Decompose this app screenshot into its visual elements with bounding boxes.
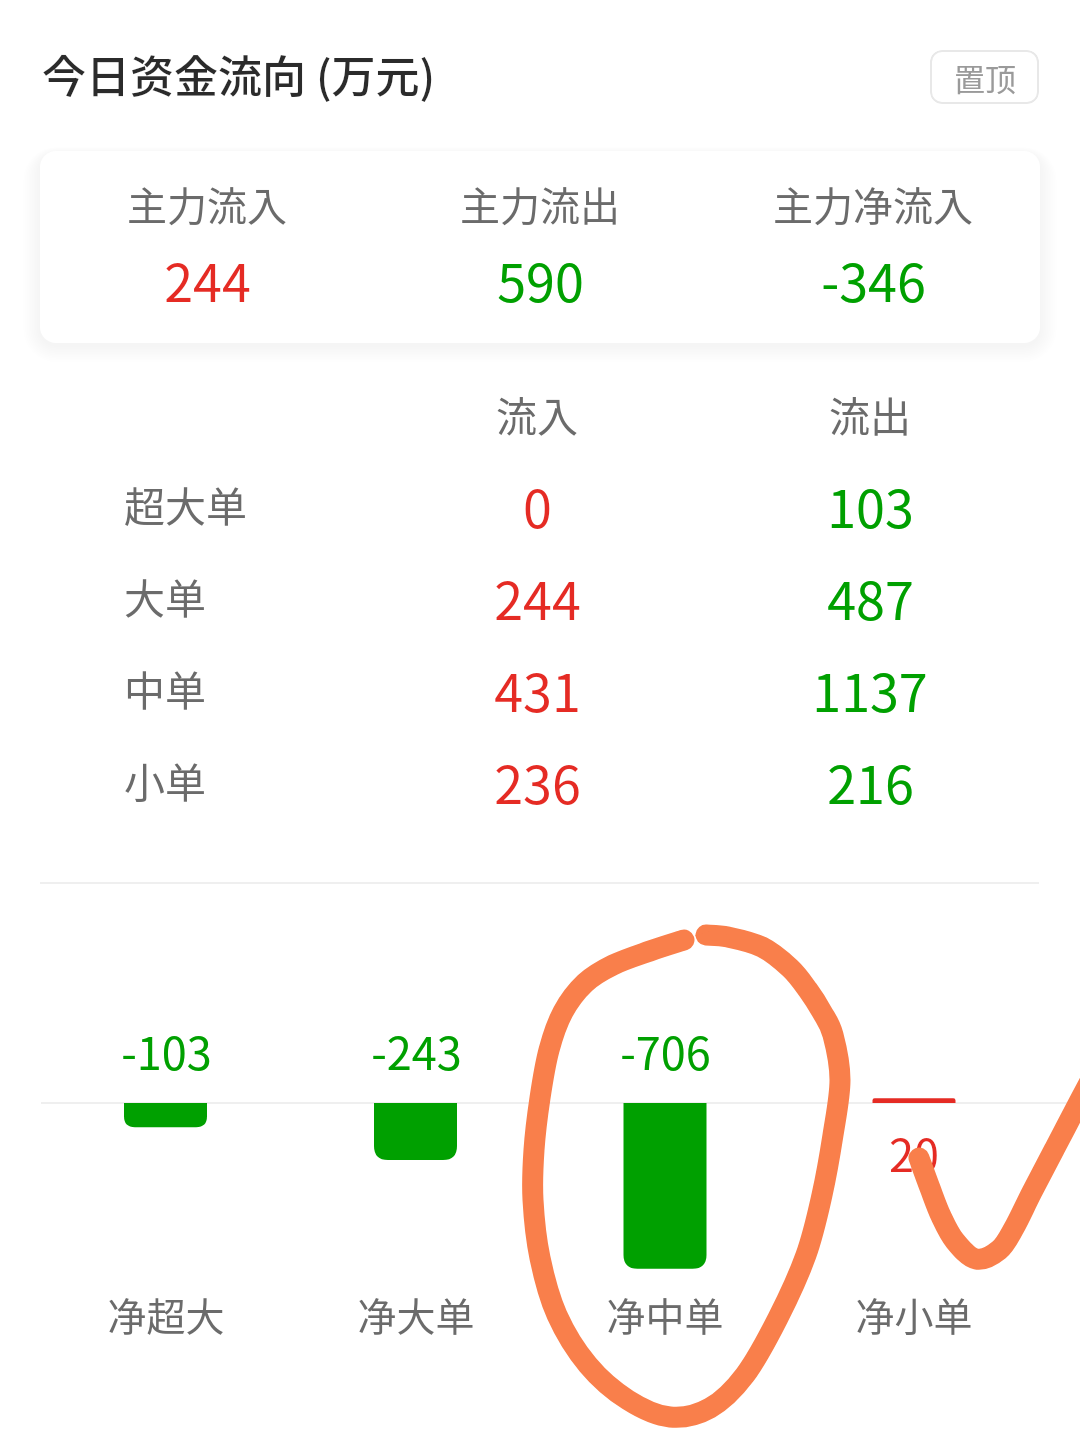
staticText: 中单 <box>124 658 206 717</box>
staticText: 流出 <box>829 384 911 443</box>
staticText: 244 <box>164 242 251 317</box>
staticText: 1137 <box>812 652 928 727</box>
staticText: -346 <box>821 242 926 317</box>
button[interactable]: 今日资金流向 (万元) <box>0 10 560 130</box>
button[interactable] <box>40 551 1040 643</box>
staticText: 主力净流入 <box>773 175 973 233</box>
staticText: 244 <box>494 560 581 635</box>
staticText: 590 <box>497 242 584 317</box>
staticText: 置顶 <box>954 55 1016 100</box>
staticText: 216 <box>827 744 914 819</box>
staticText: -103 <box>121 1018 212 1083</box>
staticText: 净超大 <box>107 1286 225 1342</box>
button[interactable] <box>40 459 1040 551</box>
staticText: 103 <box>827 468 914 543</box>
button[interactable] <box>40 151 1040 343</box>
staticText: 大单 <box>124 566 206 625</box>
staticText: 净大单 <box>357 1286 475 1342</box>
staticText: 主力流入 <box>127 175 287 233</box>
staticText: 主力流出 <box>460 175 620 233</box>
staticText: 净小单 <box>855 1286 973 1342</box>
button[interactable] <box>40 735 1040 827</box>
staticText: 236 <box>494 744 581 819</box>
staticText: 今日资金流向 (万元) <box>42 42 436 106</box>
staticText: -706 <box>620 1018 711 1083</box>
staticText: -243 <box>371 1018 462 1083</box>
staticText: 487 <box>827 560 914 635</box>
button[interactable] <box>40 643 1040 735</box>
staticText: 超大单 <box>124 474 247 533</box>
staticText: 净中单 <box>606 1286 724 1342</box>
staticText: 0 <box>523 468 552 543</box>
staticText: 流入 <box>496 384 578 443</box>
button[interactable]: 置顶 <box>930 50 1039 104</box>
staticText: 20 <box>889 1120 939 1185</box>
staticText: 小单 <box>124 750 206 809</box>
staticText: 431 <box>494 652 581 727</box>
button[interactable]: 资金净流入柱状图 <box>40 900 1040 1400</box>
